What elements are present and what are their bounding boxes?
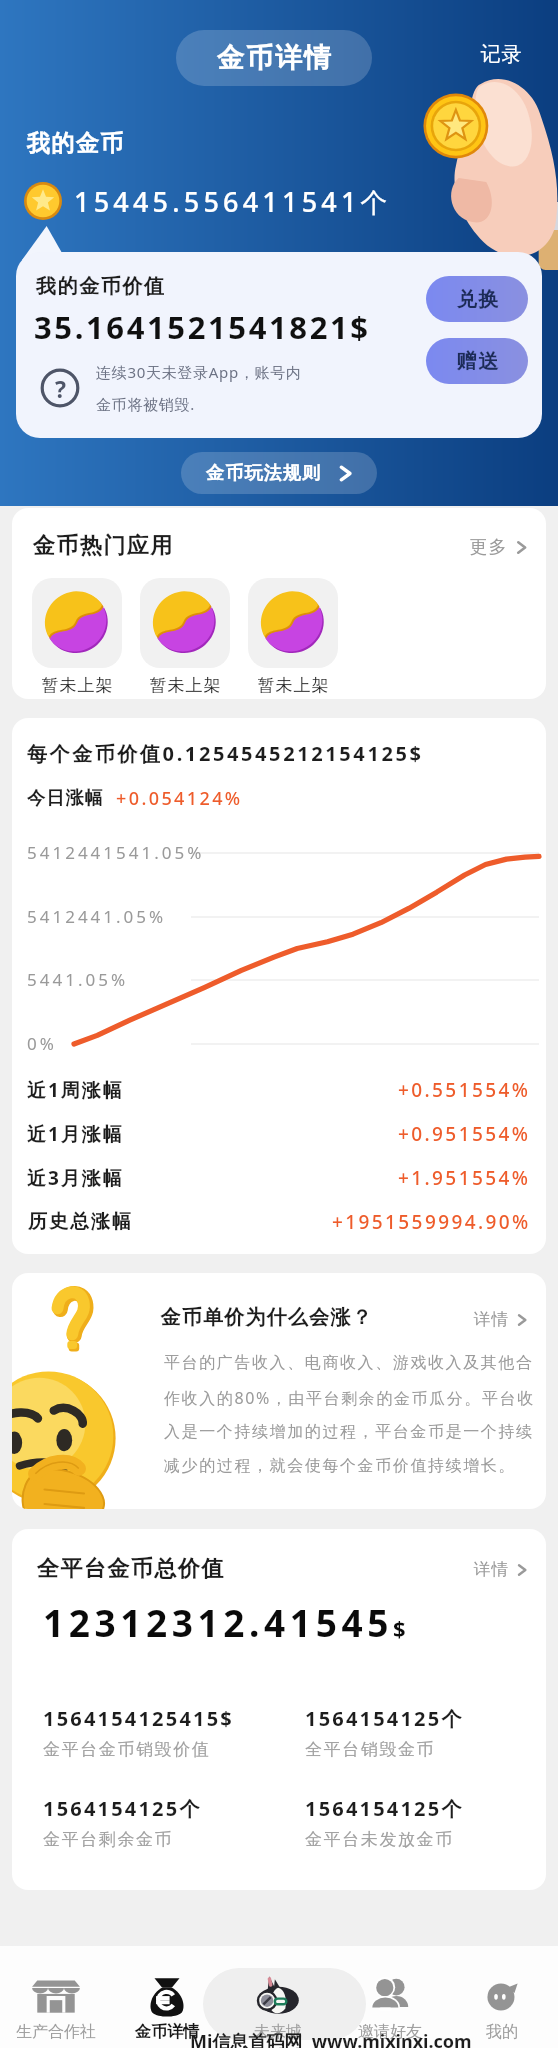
- staticText: 1564154125个: [43, 1795, 202, 1822]
- staticText: 金平台未发放金币: [305, 1829, 454, 1850]
- staticText: 详情: [473, 1559, 509, 1580]
- staticText: 5412441541.05%: [27, 841, 205, 864]
- staticText: 兑换: [456, 287, 499, 312]
- staticText: 更多: [469, 536, 507, 559]
- staticText: 35.1641521541821$: [34, 306, 371, 348]
- staticText: 暂未上架: [41, 675, 113, 696]
- staticText: 金平台剩余金币: [43, 1829, 174, 1850]
- staticText: 金币详情: [216, 41, 332, 75]
- staticText: 暂未上架: [149, 675, 221, 696]
- staticText: 详情: [473, 1309, 509, 1330]
- staticText: 0%: [27, 1032, 57, 1055]
- staticText: 5412441.05%: [27, 905, 167, 928]
- button[interactable]: 暂未上架: [248, 578, 338, 696]
- staticText: 每个金币价值0.1254545212154125$: [27, 740, 424, 767]
- staticText: +0.551554%: [398, 1077, 531, 1103]
- staticText: 邀请好友: [358, 2022, 422, 2042]
- button[interactable]: Future city: [222, 1946, 334, 2042]
- button[interactable]: 详情: [473, 1559, 528, 1580]
- button[interactable]: Production co-op: [0, 1946, 111, 2042]
- staticText: 近1月涨幅: [27, 1121, 124, 1147]
- button[interactable]: Coin details: [111, 1946, 222, 2042]
- staticText: ?: [55, 373, 66, 404]
- staticText: 我的: [486, 2022, 518, 2042]
- staticText: 赠送: [456, 349, 499, 374]
- staticText: +0.054124%: [116, 786, 243, 811]
- staticText: 未来城: [254, 2022, 302, 2042]
- button[interactable]: 更多: [469, 536, 528, 559]
- staticText: Mi信息首码网 www.mixinxi.com: [190, 2029, 472, 2048]
- staticText: 全平台销毁金币: [305, 1739, 436, 1760]
- staticText: 今日涨幅: [27, 787, 104, 810]
- button[interactable]: 兑换: [426, 276, 528, 322]
- button[interactable]: 金币详情: [176, 30, 372, 86]
- staticText: 我的金币: [26, 129, 124, 158]
- staticText: 我的金币价值: [36, 274, 166, 299]
- button[interactable]: 赠送: [426, 338, 528, 384]
- staticText: 12312312.41545: [43, 1597, 393, 1647]
- button[interactable]: 暂未上架: [140, 578, 230, 696]
- button[interactable]: 记录: [480, 42, 522, 67]
- staticText: 连续30天未登录App，账号内: [96, 362, 302, 382]
- staticText: 金币详情: [135, 2022, 199, 2042]
- button[interactable]: Invite friends: [334, 1946, 446, 2042]
- staticText: $: [393, 1613, 406, 1643]
- staticText: 金币热门应用: [32, 532, 173, 560]
- staticText: 历史总涨幅: [27, 1210, 132, 1234]
- staticText: 15445.556411541个: [74, 183, 392, 220]
- staticText: +1951559994.90%: [332, 1209, 531, 1235]
- staticText: 近1周涨幅: [27, 1077, 124, 1103]
- staticText: 金币玩法规则: [206, 462, 322, 485]
- staticText: +0.951554%: [398, 1121, 531, 1147]
- button[interactable]: 暂未上架: [32, 578, 122, 696]
- staticText: 平台的广告收入、电商收入、游戏收入及其他合作收入的80%，由平台剩余的金币瓜分。…: [164, 1353, 538, 1476]
- staticText: +1.951554%: [398, 1165, 531, 1191]
- button[interactable]: 金币玩法规则: [181, 452, 377, 494]
- button[interactable]: 详情: [473, 1309, 528, 1330]
- staticText: 近3月涨幅: [27, 1165, 124, 1191]
- staticText: 5441.05%: [27, 968, 129, 991]
- staticText: 1564154125个: [305, 1705, 464, 1732]
- button[interactable]: Mine: [446, 1946, 558, 2042]
- staticText: 生产合作社: [16, 2022, 96, 2042]
- staticText: 暂未上架: [257, 675, 329, 696]
- staticText: 1564154125个: [305, 1795, 464, 1822]
- staticText: 全平台金币总价值: [36, 1555, 224, 1583]
- staticText: 金币单价为什么会涨？: [160, 1305, 372, 1330]
- staticText: 记录: [480, 42, 522, 67]
- staticText: 金币将被销毁.: [96, 394, 195, 414]
- staticText: 金平台金币销毁价值: [43, 1739, 211, 1760]
- staticText: 1564154125415$: [43, 1705, 234, 1732]
